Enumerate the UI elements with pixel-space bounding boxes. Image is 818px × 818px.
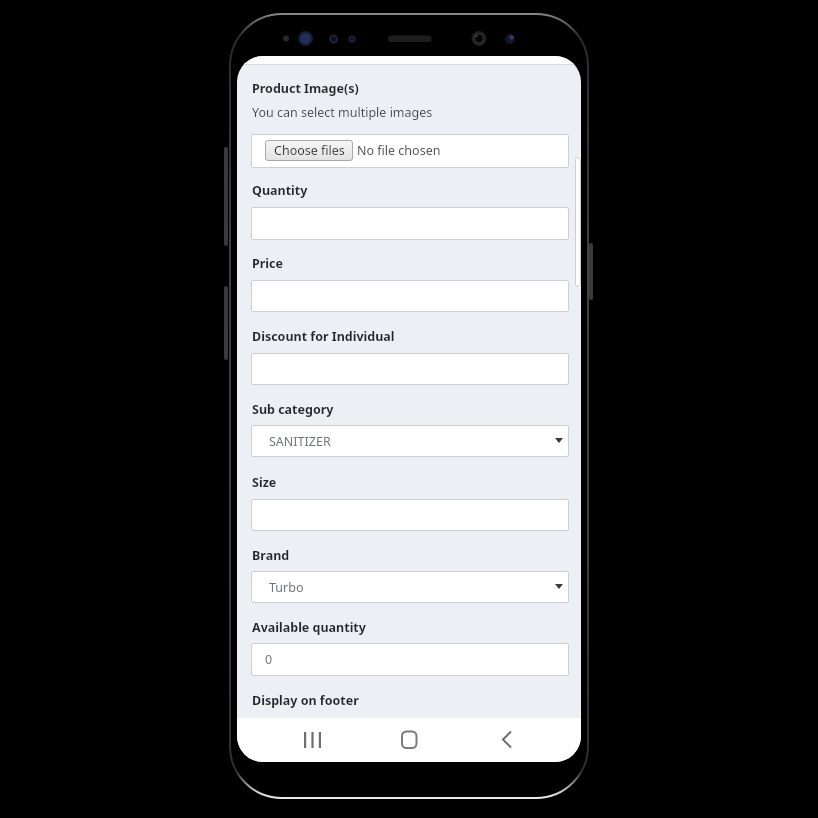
button[interactable] xyxy=(297,726,327,754)
staticText: You can select multiple images xyxy=(252,104,433,121)
staticText: Brand xyxy=(252,547,290,564)
staticText: Sub category xyxy=(252,401,334,418)
button[interactable]: SANITIZER xyxy=(251,425,569,457)
staticText: No file chosen xyxy=(357,142,441,159)
button[interactable]: Turbo xyxy=(251,571,569,603)
button[interactable] xyxy=(251,499,569,531)
button[interactable] xyxy=(251,280,569,312)
staticText: Quantity xyxy=(252,182,308,199)
button[interactable] xyxy=(251,207,569,240)
button[interactable]: Choose files xyxy=(251,134,569,168)
staticText: 0 xyxy=(265,651,273,668)
staticText: Discount for Individual xyxy=(252,328,395,345)
staticText: Turbo xyxy=(269,579,304,596)
button[interactable]: 0 xyxy=(251,643,569,676)
button[interactable] xyxy=(251,353,569,385)
staticText: Product Image(s) xyxy=(252,80,359,97)
staticText: SANITIZER xyxy=(269,433,331,450)
staticText: Price xyxy=(252,255,284,272)
button[interactable]: Choose files xyxy=(265,140,353,161)
staticText: Size xyxy=(252,474,277,491)
button[interactable] xyxy=(394,726,424,754)
button[interactable] xyxy=(492,726,522,754)
staticText: Available quantity xyxy=(252,619,366,636)
staticText: Display on footer xyxy=(252,692,359,709)
staticText: Choose files xyxy=(274,142,345,159)
